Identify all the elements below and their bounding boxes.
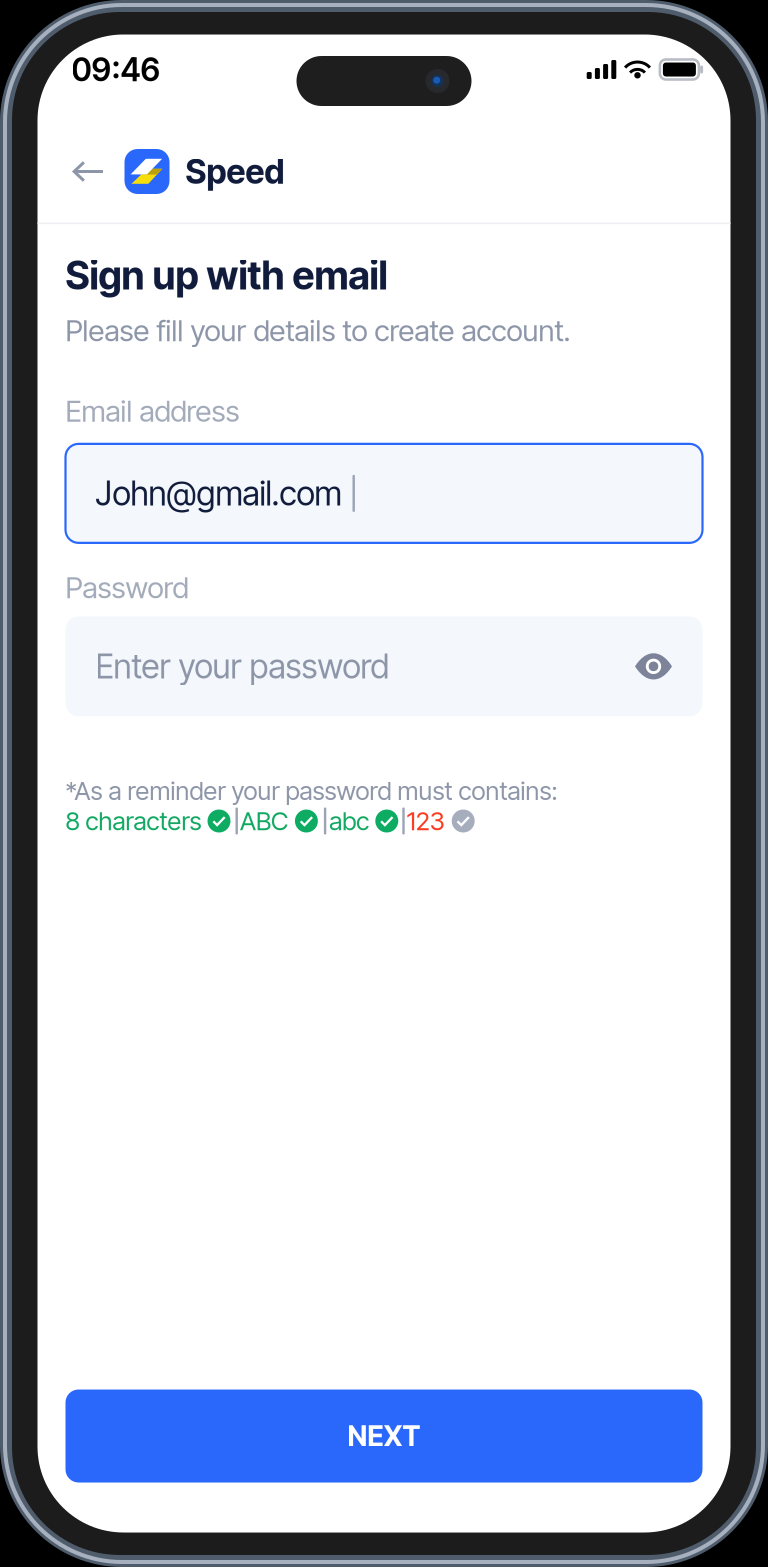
staticText: 8 characters bbox=[65, 806, 201, 836]
staticText: ABC bbox=[240, 806, 288, 836]
button[interactable]: Back bbox=[69, 148, 107, 194]
staticText: NEXT bbox=[347, 1419, 420, 1453]
button[interactable]: Show password bbox=[630, 639, 676, 694]
staticText: *As a reminder your password must contai… bbox=[65, 775, 557, 806]
staticText: Sign up with email bbox=[65, 252, 387, 299]
staticText: Enter your password bbox=[95, 646, 389, 686]
staticText: 09:46 bbox=[71, 50, 160, 89]
staticText: abc bbox=[329, 806, 369, 836]
staticText: Speed bbox=[185, 151, 284, 192]
staticText: 123 bbox=[407, 806, 445, 836]
staticText: Password bbox=[65, 570, 188, 605]
staticText: John@gmail.com bbox=[95, 473, 341, 513]
staticText: Please fill your details to create accou… bbox=[65, 313, 570, 348]
button[interactable]: NEXT bbox=[65, 1389, 702, 1482]
staticText: Email address bbox=[65, 393, 239, 429]
